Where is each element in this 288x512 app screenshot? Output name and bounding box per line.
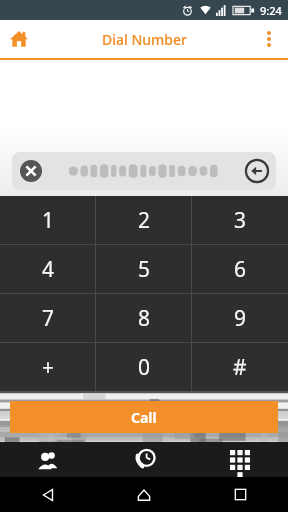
- staticText: 2: [138, 206, 151, 235]
- button[interactable]: #: [192, 343, 288, 391]
- button[interactable]: 7: [0, 294, 96, 342]
- button[interactable]: Home: [96, 477, 192, 512]
- button[interactable]: Home: [0, 20, 38, 58]
- staticText: 9: [234, 304, 247, 333]
- button[interactable]: Backspace: [246, 160, 268, 182]
- staticText: Dial Number: [102, 30, 187, 49]
- staticText: +: [42, 353, 55, 382]
- button[interactable]: Recent calls: [96, 442, 192, 477]
- button[interactable]: 4: [0, 245, 96, 293]
- button[interactable]: Clear: [20, 160, 42, 182]
- staticText: 7: [42, 304, 55, 333]
- staticText: Call: [131, 408, 157, 427]
- staticText: 9:24: [260, 3, 282, 18]
- button[interactable]: Contacts: [0, 442, 96, 477]
- button[interactable]: Dialpad: [192, 442, 288, 477]
- staticText: 8: [138, 304, 151, 333]
- button[interactable]: 3: [192, 196, 288, 244]
- button[interactable]: Back: [0, 477, 96, 512]
- staticText: 4: [42, 255, 55, 284]
- button[interactable]: 5: [96, 245, 192, 293]
- staticText: 3: [234, 206, 247, 235]
- staticText: #: [233, 353, 247, 382]
- button[interactable]: 8: [96, 294, 192, 342]
- button[interactable]: More options: [250, 20, 288, 58]
- button[interactable]: 2: [96, 196, 192, 244]
- staticText: 0: [138, 353, 151, 382]
- button[interactable]: Clear: [12, 152, 276, 190]
- button[interactable]: +: [0, 343, 96, 391]
- button[interactable]: 9: [192, 294, 288, 342]
- button[interactable]: Recents: [192, 477, 288, 512]
- button[interactable]: Call: [10, 401, 278, 433]
- staticText: 1: [42, 206, 55, 235]
- button[interactable]: 0: [96, 343, 192, 391]
- button[interactable]: 6: [192, 245, 288, 293]
- staticText: 5: [138, 255, 151, 284]
- button[interactable]: 1: [0, 196, 96, 244]
- staticText: 6: [234, 255, 247, 284]
